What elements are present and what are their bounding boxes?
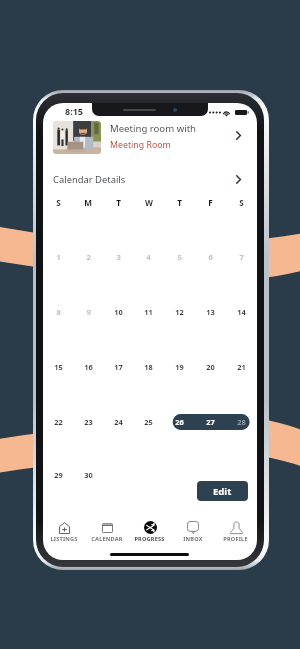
- button[interactable]: 9: [86, 307, 91, 317]
- button[interactable]: 15: [54, 362, 63, 372]
- button[interactable]: Meeting room with: [43, 117, 257, 157]
- button[interactable]: 22: [54, 417, 63, 427]
- staticText: Edit: [213, 485, 232, 498]
- staticText: INBOX: [183, 535, 203, 543]
- button[interactable]: PROFILE: [214, 517, 257, 547]
- staticText: F: [208, 197, 213, 208]
- button[interactable]: 19: [175, 362, 184, 372]
- button[interactable]: 14: [237, 307, 246, 317]
- staticText: M: [84, 197, 92, 208]
- button[interactable]: 26: [175, 417, 184, 427]
- other: Open meeting: [233, 128, 243, 142]
- button[interactable]: 13: [206, 307, 215, 317]
- staticText: S: [56, 197, 61, 208]
- button[interactable]: Edit: [197, 481, 248, 501]
- button[interactable]: 28: [237, 417, 246, 427]
- staticText: 8:15: [65, 105, 83, 117]
- staticText: CALENDAR: [91, 535, 123, 543]
- staticText: T: [116, 197, 121, 208]
- button[interactable]: 8: [56, 307, 61, 317]
- staticText: Meeting room with: [110, 122, 197, 135]
- button[interactable]: CALENDAR: [85, 517, 128, 547]
- button[interactable]: 21: [237, 362, 246, 372]
- staticText: Calendar Details: [53, 173, 126, 186]
- other: Calendar details: [233, 172, 243, 186]
- button[interactable]: 12: [175, 307, 184, 317]
- button[interactable]: 5: [177, 252, 182, 262]
- button[interactable]: INBOX: [171, 517, 214, 547]
- button[interactable]: 18: [144, 362, 153, 372]
- button[interactable]: 29: [54, 470, 63, 480]
- staticText: Meeting Room: [110, 139, 171, 151]
- button[interactable]: 16: [84, 362, 93, 372]
- staticText: T: [177, 197, 182, 208]
- staticText: PROFILE: [223, 535, 248, 543]
- button[interactable]: 20: [206, 362, 215, 372]
- button[interactable]: 11: [144, 307, 153, 317]
- staticText: W: [145, 197, 153, 208]
- button[interactable]: [43, 413, 257, 431]
- button[interactable]: PROGRESS: [128, 517, 171, 547]
- button[interactable]: 23: [84, 417, 93, 427]
- button[interactable]: 4: [146, 252, 151, 262]
- button[interactable]: 24: [114, 417, 123, 427]
- staticText: S: [239, 197, 244, 208]
- button[interactable]: 1: [56, 252, 61, 262]
- button[interactable]: LISTINGS: [43, 517, 85, 547]
- button[interactable]: 7: [239, 252, 244, 262]
- button[interactable]: 3: [116, 252, 121, 262]
- button[interactable]: 25: [144, 417, 153, 427]
- staticText: PROGRESS: [134, 535, 165, 543]
- button[interactable]: 10: [114, 307, 123, 317]
- button[interactable]: 17: [114, 362, 123, 372]
- button[interactable]: 27: [206, 417, 215, 427]
- button[interactable]: 30: [84, 470, 93, 480]
- button[interactable]: 6: [208, 252, 213, 262]
- button[interactable]: Calendar Details: [43, 167, 257, 191]
- button[interactable]: 2: [86, 252, 91, 262]
- staticText: LISTINGS: [50, 535, 78, 543]
